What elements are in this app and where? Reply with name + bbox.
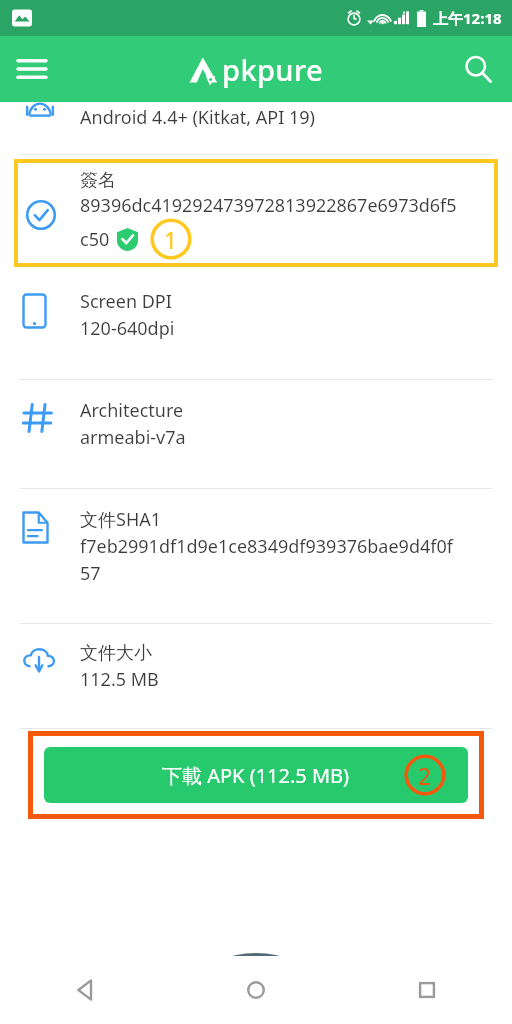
staticText: Android 4.4+ (Kitkat, API 19) [80, 105, 316, 130]
staticText: Architecture [80, 398, 184, 423]
staticText: 89396dc419292473972813922867e6973d6f5 [80, 193, 457, 218]
button[interactable]: 下載 APK (112.5 MB) [44, 747, 468, 803]
staticText: f7eb2991df1d9e1ce8349df939376bae9d4f0f [80, 534, 453, 559]
button[interactable]: 1 [150, 218, 192, 260]
staticText: pkpure [222, 50, 324, 89]
staticText: 上午12:18 [433, 8, 502, 28]
staticText: 文件大小 [80, 642, 152, 665]
staticText: 1 [164, 224, 178, 255]
staticText: Screen DPI [80, 289, 172, 314]
staticText: 簽名 [80, 169, 116, 192]
button[interactable]: Android 4.4+ (Kitkat, API 19) [0, 102, 512, 154]
button[interactable]: Open navigation menu [10, 47, 54, 91]
button[interactable]: 2 [404, 754, 446, 796]
button[interactable]: Close ad [0, 982, 512, 1024]
button[interactable]: Search [454, 45, 502, 93]
button[interactable]: Recent apps [341, 956, 512, 1024]
button[interactable]: Home [170, 956, 341, 1024]
button[interactable]: 文件大小 [0, 624, 512, 728]
staticText: c50 [80, 227, 110, 252]
button[interactable]: pkpure [189, 50, 324, 89]
button[interactable]: Architecture [0, 380, 512, 488]
staticText: 57 [80, 561, 101, 586]
button[interactable]: Collapse details [204, 953, 308, 979]
staticText: 文件SHA1 [80, 507, 162, 532]
staticText: 2 [418, 760, 432, 791]
button[interactable]: 簽名 [14, 159, 498, 267]
button[interactable]: Screen DPI [0, 271, 512, 379]
staticText: 120-640dpi [80, 316, 175, 341]
button[interactable]: Back [0, 956, 170, 1024]
staticText: 下載 APK (112.5 MB) [162, 762, 350, 789]
button[interactable]: 文件SHA1 [0, 489, 512, 623]
staticText: armeabi-v7a [80, 425, 186, 450]
staticText: 112.5 MB [80, 667, 159, 692]
